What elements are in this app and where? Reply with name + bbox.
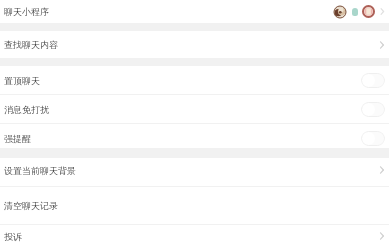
staticText: 设置当前聊天背景 bbox=[4, 165, 76, 176]
button[interactable]: 置顶聊天 bbox=[0, 66, 389, 94]
button[interactable]: Chat participants bbox=[334, 5, 385, 18]
staticText: 强提醒 bbox=[4, 133, 31, 144]
button[interactable]: 清空聊天记录 bbox=[0, 187, 389, 224]
button[interactable]: 查找聊天内容 bbox=[0, 31, 389, 58]
staticText: 聊天小程序 bbox=[4, 6, 49, 17]
button[interactable]: 消息免打扰 toggle, off bbox=[361, 102, 385, 117]
button[interactable]: 强提醒 toggle, off bbox=[361, 131, 385, 146]
button[interactable]: 强提醒 bbox=[0, 124, 389, 148]
button[interactable]: 消息免打扰 bbox=[0, 95, 389, 123]
button[interactable]: 置顶聊天 toggle, off bbox=[361, 73, 385, 88]
staticText: 投诉 bbox=[4, 231, 22, 242]
staticText: 清空聊天记录 bbox=[4, 200, 58, 211]
staticText: 查找聊天内容 bbox=[4, 39, 58, 50]
staticText: 置顶聊天 bbox=[4, 75, 40, 86]
button[interactable]: 设置当前聊天背景 bbox=[0, 158, 389, 186]
button[interactable]: 投诉 bbox=[0, 225, 389, 251]
staticText: 消息免打扰 bbox=[4, 104, 49, 115]
